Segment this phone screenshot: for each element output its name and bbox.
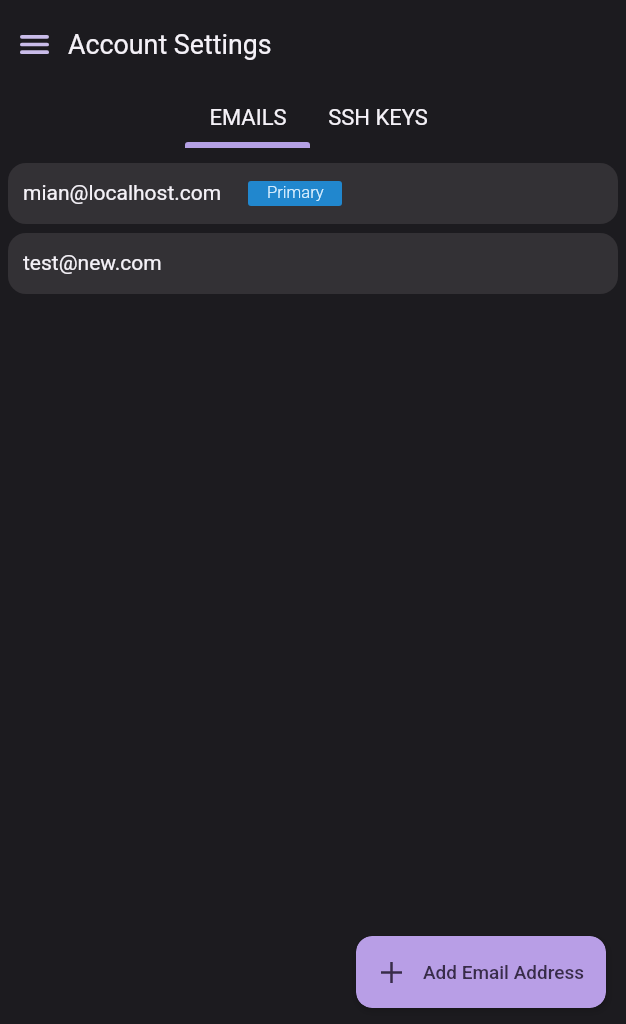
- staticText: Primary: [267, 183, 324, 202]
- staticText: SSH KEYS: [328, 105, 428, 131]
- staticText: EMAILS: [209, 105, 287, 131]
- staticText: test@new.com: [23, 251, 162, 276]
- button[interactable]: Open navigation menu: [10, 20, 58, 68]
- button[interactable]: test@new.com: [8, 233, 618, 294]
- staticText: mian@localhost.com: [23, 181, 222, 206]
- button[interactable]: EMAILS: [185, 88, 310, 148]
- staticText: Add Email Address: [423, 961, 584, 983]
- button[interactable]: Add Email Address: [356, 936, 606, 1008]
- button[interactable]: mian@localhost.com: [8, 163, 618, 224]
- staticText: Account Settings: [68, 29, 272, 60]
- button[interactable]: SSH KEYS: [310, 88, 446, 148]
